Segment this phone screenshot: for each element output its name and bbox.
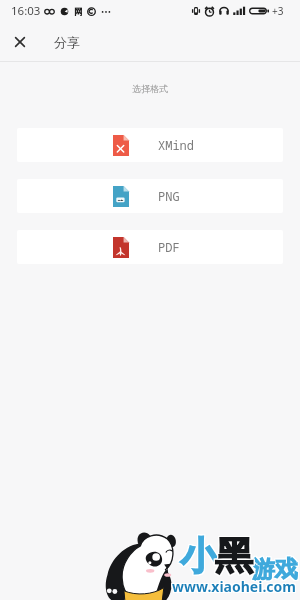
staticText: 黑 (216, 533, 254, 581)
button[interactable]: PNG (17, 179, 283, 213)
staticText: +3 (272, 4, 284, 18)
staticText: 黑 (216, 532, 254, 580)
staticText: www.xiaohei.com (171, 577, 295, 596)
staticText: 游戏 (252, 555, 298, 584)
staticText: 黑 (215, 531, 253, 579)
staticText: XMind (158, 137, 195, 153)
staticText: 黑 (214, 531, 252, 579)
staticText: 小 (180, 531, 218, 579)
staticText: www.xiaohei.com (171, 576, 295, 595)
button[interactable]: Close (8, 30, 32, 54)
staticText: 网 (74, 7, 82, 16)
staticText: 黑 (216, 531, 254, 579)
staticText: www.xiaohei.com (172, 578, 296, 597)
staticText: 小 (180, 533, 218, 581)
staticText: 小 (181, 531, 219, 579)
staticText: www.xiaohei.com (173, 576, 297, 595)
staticText: PNG (158, 188, 180, 204)
staticText: 黑 (214, 533, 252, 581)
staticText: 选择格式 (0, 83, 300, 94)
staticText: 黑 (215, 532, 253, 580)
staticText: 小 (180, 532, 218, 580)
staticText: 游戏 (252, 554, 298, 583)
staticText: www.xiaohei.com (173, 578, 297, 597)
staticText: www.xiaohei.com (172, 577, 296, 596)
staticText: 游戏 (251, 554, 297, 583)
staticText: 小 (179, 531, 217, 579)
staticText: 游戏 (253, 556, 299, 585)
staticText: www.xiaohei.com (172, 576, 296, 595)
button[interactable]: PDF (17, 230, 283, 264)
staticText: 黑 (215, 533, 253, 581)
staticText: 小 (181, 533, 219, 581)
staticText: 游戏 (252, 556, 298, 585)
staticText: 游戏 (253, 555, 299, 584)
staticText: 游戏 (253, 554, 299, 583)
staticText: 游戏 (251, 555, 297, 584)
staticText: www.xiaohei.com (173, 577, 297, 596)
staticText: www.xiaohei.com (171, 578, 295, 597)
staticText: 小 (179, 533, 217, 581)
staticText: 16:03 (11, 3, 41, 19)
staticText: 分享 (54, 34, 80, 50)
staticText: 游戏 (251, 556, 297, 585)
staticText: 黑 (214, 532, 252, 580)
staticText: 小 (179, 532, 217, 580)
staticText: PDF (158, 239, 180, 255)
staticText: 小 (181, 532, 219, 580)
button[interactable]: XMind (17, 128, 283, 162)
